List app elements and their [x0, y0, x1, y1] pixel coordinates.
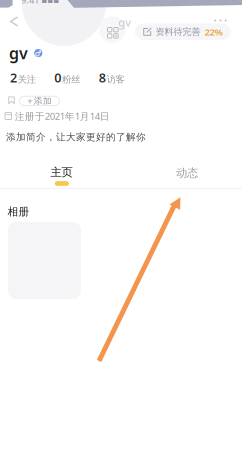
button[interactable]: 资料待完善: [135, 23, 231, 40]
staticText: gv: [118, 14, 131, 30]
staticText: 9:41 ▪▪▪: [21, 0, 59, 6]
button[interactable]: 添加简介，让大家更好的了解你: [6, 131, 146, 143]
button[interactable]: Back: [3, 10, 25, 32]
staticText: 访客: [106, 74, 124, 85]
staticText: 添加: [34, 95, 52, 106]
button[interactable]: 主页: [0, 160, 121, 189]
staticText: 相册: [7, 205, 29, 218]
staticText: 关注: [18, 74, 36, 85]
staticText: 动态: [176, 166, 198, 180]
staticText: 注册于2021年1月14日: [15, 109, 110, 123]
button[interactable]: More options: [208, 13, 232, 27]
button[interactable]: Scan QR code: [99, 16, 126, 43]
button[interactable]: +: [19, 96, 59, 106]
button[interactable]: 8: [99, 71, 124, 84]
staticText: gv: [9, 42, 28, 64]
staticText: 2: [10, 69, 17, 86]
staticText: 添加简介，让大家更好的了解你: [6, 131, 146, 143]
button[interactable]: 2: [10, 71, 36, 84]
button[interactable]: 动态: [121, 160, 242, 189]
staticText: 8: [99, 69, 106, 86]
button[interactable]: 0: [54, 71, 80, 84]
staticText: 主页: [50, 165, 72, 179]
staticText: 22%: [205, 25, 223, 38]
staticText: +: [27, 94, 32, 107]
staticText: 资料待完善: [156, 26, 201, 37]
staticText: 0: [54, 69, 61, 86]
staticText: 粉丝: [62, 74, 80, 85]
